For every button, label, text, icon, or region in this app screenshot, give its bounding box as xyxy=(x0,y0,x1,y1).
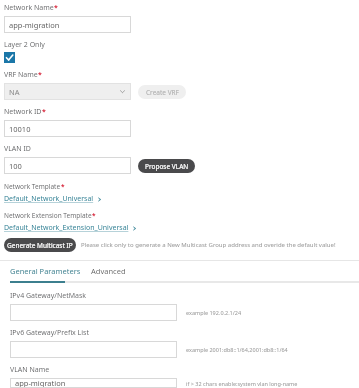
button[interactable] xyxy=(10,341,177,358)
button[interactable]: app-migration xyxy=(4,16,131,33)
button[interactable]: Create VRF xyxy=(138,85,186,99)
staticText: app-migration xyxy=(9,20,60,30)
button[interactable]: Layer 2 Only checkbox, checked xyxy=(4,52,15,63)
staticText: Network Template xyxy=(4,182,61,191)
staticText: * xyxy=(42,107,46,117)
staticText: * xyxy=(92,211,96,220)
staticText: Please click only to generate a New Mult… xyxy=(81,241,336,249)
staticText: Advanced xyxy=(91,266,126,276)
staticText: * xyxy=(38,70,42,80)
button[interactable]: Generate Multicast IP xyxy=(4,238,76,252)
staticText: IPv4 Gateway/NetMask xyxy=(10,291,87,301)
staticText: Network ID xyxy=(4,107,42,117)
staticText: * xyxy=(61,182,65,191)
staticText: General Parameters xyxy=(10,266,81,276)
staticText: Network Name xyxy=(4,3,54,13)
staticText: Default_Network_Extension_Universal xyxy=(4,223,129,233)
button[interactable] xyxy=(10,304,177,321)
staticText: if > 32 chars enable:system vlan long-na… xyxy=(186,380,298,387)
staticText: 100 xyxy=(9,161,22,171)
staticText: IPv6 Gateway/Prefix List xyxy=(10,328,89,338)
staticText: Network Extension Template xyxy=(4,211,92,220)
staticText: example 192.0.2.1/24 xyxy=(186,309,242,316)
staticText: VLAN ID xyxy=(4,144,31,154)
staticText: VRF Name xyxy=(4,70,38,80)
staticText: example 2001:db8::1/64,2001:db8::1/64 xyxy=(186,346,288,353)
staticText: Propose VLAN xyxy=(145,162,189,171)
button[interactable]: Default_Network_Extension_Universal xyxy=(4,223,137,233)
button[interactable]: General Parameters xyxy=(10,266,83,278)
button[interactable]: Propose VLAN xyxy=(138,159,195,173)
staticText: app-migration xyxy=(15,378,66,388)
staticText: VLAN Name xyxy=(10,365,50,375)
button[interactable]: Advanced xyxy=(91,266,126,278)
staticText: Layer 2 Only xyxy=(4,40,45,50)
staticText: Create VRF xyxy=(146,88,179,97)
staticText: NA xyxy=(9,87,20,97)
button[interactable]: Default_Network_Universal xyxy=(4,194,102,204)
staticText: 10010 xyxy=(9,124,31,134)
staticText: * xyxy=(54,3,58,13)
staticText: Default_Network_Universal xyxy=(4,194,94,204)
button[interactable]: app-migration xyxy=(10,378,177,388)
button[interactable]: VRF Name dropdown xyxy=(4,83,131,100)
button[interactable]: 100 xyxy=(4,157,131,174)
staticText: Generate Multicast IP xyxy=(7,241,73,250)
button[interactable]: 10010 xyxy=(4,120,131,137)
